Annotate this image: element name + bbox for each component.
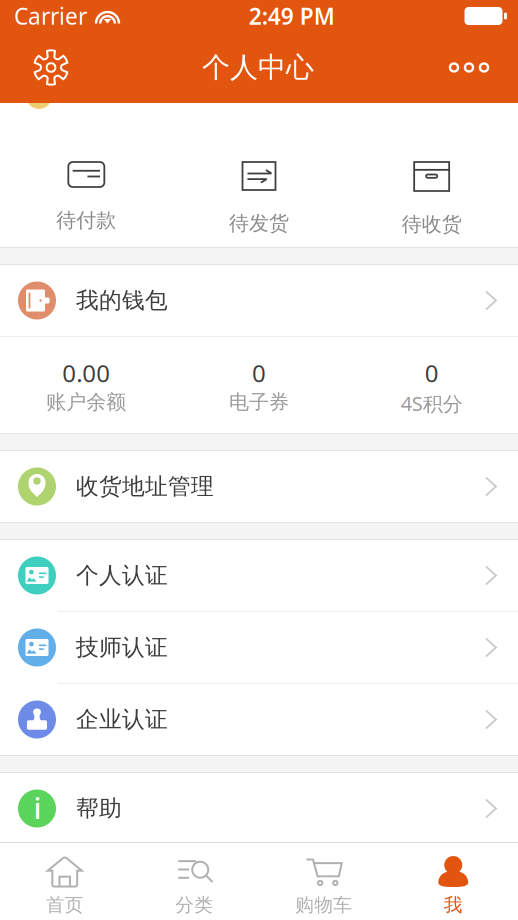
button[interactable]: 个人认证 [0,540,518,611]
button[interactable]: 购物车 [259,843,388,920]
staticText: 我的钱包 [76,287,168,314]
staticText: 企业认证 [76,706,168,733]
staticText: Carrier [14,1,87,31]
staticText: 首页 [46,893,84,916]
staticText: 待收货 [402,212,462,237]
button[interactable]: 分类 [129,843,259,920]
button[interactable]: 0.00 [0,337,173,433]
staticText: 分类 [175,893,213,916]
button[interactable]: 待收货 [345,103,518,247]
staticText: 待发货 [229,211,289,236]
staticText: 购物车 [295,893,352,916]
staticText: 4S积分 [401,390,463,417]
staticText: 账户余额 [46,390,126,414]
staticText: 帮助 [76,795,122,822]
button[interactable]: Settings [0,32,84,103]
button[interactable]: 企业认证 [0,684,518,755]
staticText: i [33,788,41,827]
staticText: 个人认证 [76,562,168,589]
staticText: 电子券 [229,390,289,414]
button[interactable]: 收货地址管理 [0,451,518,522]
button[interactable]: 技师认证 [0,612,518,683]
button[interactable]: 待付款 [0,103,173,247]
button[interactable]: 0 [173,337,345,433]
staticText: 0 [252,357,266,389]
staticText: 收货地址管理 [76,473,214,500]
button[interactable]: i [0,773,518,844]
button[interactable]: More [432,32,518,103]
staticText: 0.00 [62,357,110,389]
button[interactable]: 首页 [0,843,129,920]
button[interactable]: 待发货 [173,103,345,247]
staticText: 待付款 [56,208,116,233]
staticText: 我 [444,893,463,916]
button[interactable]: 我的钱包 [0,265,518,336]
staticText: 2:49 PM [249,1,335,31]
staticText: 0 [425,357,439,389]
button[interactable]: 我 [388,843,518,920]
staticText: 技师认证 [76,634,168,661]
staticText: 个人中心 [202,50,314,85]
button[interactable]: 0 [345,337,518,433]
